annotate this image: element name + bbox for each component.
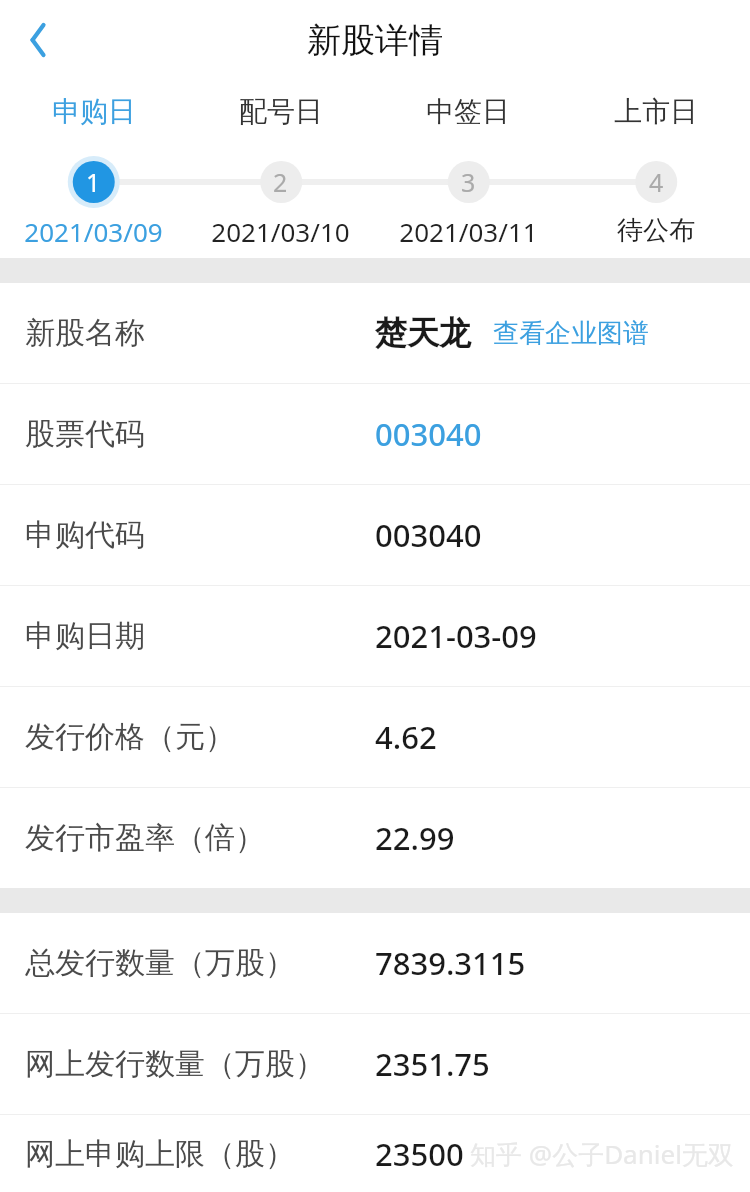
staticText: 总发行数量（万股） xyxy=(25,944,295,982)
staticText: 申购日 xyxy=(52,94,136,129)
staticText: 楚天龙 xyxy=(375,313,471,353)
staticText: 4 xyxy=(649,165,664,199)
staticText: 2021/03/11 xyxy=(399,214,538,249)
staticText: 查看企业图谱 xyxy=(493,317,649,350)
staticText: 申购日期 xyxy=(25,617,145,655)
staticText: 2021/03/10 xyxy=(211,214,350,249)
button[interactable]: 申购日期 xyxy=(0,586,750,686)
staticText: 3 xyxy=(461,165,476,199)
staticText: 003040 xyxy=(375,514,482,556)
staticText: 网上发行数量（万股） xyxy=(25,1045,325,1083)
button[interactable]: 网上发行数量（万股） xyxy=(0,1014,750,1114)
staticText: 1 xyxy=(86,165,101,199)
staticText: 2021/03/09 xyxy=(24,214,163,249)
staticText: 发行价格（元） xyxy=(25,718,235,756)
button[interactable]: 查看企业图谱 xyxy=(493,317,649,350)
button[interactable]: 中签日 xyxy=(374,94,562,129)
button[interactable]: 发行价格（元） xyxy=(0,687,750,787)
staticText: 申购代码 xyxy=(25,516,145,554)
staticText: 003040 xyxy=(375,413,482,455)
button[interactable]: Back xyxy=(8,10,68,70)
staticText: 2 xyxy=(273,165,288,199)
button[interactable]: 上市日 xyxy=(562,94,750,129)
staticText: 知乎 @公子Daniel无双 xyxy=(470,1136,734,1172)
staticText: 22.99 xyxy=(375,817,455,859)
staticText: 4.62 xyxy=(375,716,437,758)
button[interactable]: 网上申购上限（股） xyxy=(0,1115,750,1192)
staticText: 中签日 xyxy=(426,94,510,129)
button[interactable]: 申购日 xyxy=(0,94,187,129)
staticText: 上市日 xyxy=(614,94,698,129)
staticText: 发行市盈率（倍） xyxy=(25,819,265,857)
button[interactable]: 股票代码 xyxy=(0,384,750,484)
staticText: 配号日 xyxy=(239,94,323,129)
button[interactable]: 总发行数量（万股） xyxy=(0,913,750,1013)
staticText: 2021-03-09 xyxy=(375,615,537,657)
staticText: 网上申购上限（股） xyxy=(25,1135,295,1173)
staticText: 7839.3115 xyxy=(375,942,526,984)
staticText: 新股详情 xyxy=(307,19,443,62)
staticText: 待公布 xyxy=(617,214,695,247)
button[interactable]: 发行市盈率（倍） xyxy=(0,788,750,888)
staticText: 2351.75 xyxy=(375,1043,490,1085)
staticText: 股票代码 xyxy=(25,415,145,453)
staticText: 新股名称 xyxy=(25,314,145,352)
button[interactable]: 申购代码 xyxy=(0,485,750,585)
button[interactable]: 配号日 xyxy=(187,94,374,129)
staticText: 23500 xyxy=(375,1133,464,1175)
button[interactable]: 新股名称 xyxy=(0,283,750,383)
